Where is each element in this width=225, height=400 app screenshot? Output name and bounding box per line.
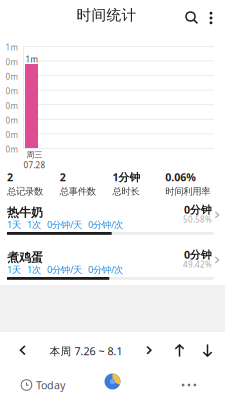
staticText: 时间利用率 [165, 186, 210, 197]
staticText: 1天 1次 0分钟/天 0分钟/次 [7, 218, 123, 231]
staticText: 49.42% [183, 259, 212, 270]
button[interactable]: Previous week [14, 336, 32, 366]
staticText: 0m [5, 115, 17, 126]
button[interactable]: 热牛奶 [0, 201, 225, 246]
staticText: 周三 [26, 150, 42, 160]
staticText: 0m [5, 130, 17, 140]
staticText: 总事件数 [60, 186, 96, 197]
staticText: 50.58% [183, 214, 212, 225]
staticText: 2 [7, 170, 13, 184]
staticText: Today [36, 378, 65, 392]
button[interactable]: 煮鸡蛋 [0, 246, 225, 291]
staticText: 0m [5, 86, 17, 96]
staticText: 1天 1次 0分钟/天 0分钟/次 [7, 263, 123, 276]
staticText: 时间统计 [76, 6, 136, 24]
staticText: 总时长 [112, 186, 139, 197]
staticText: 0m [5, 100, 17, 111]
button[interactable]: More options [202, 7, 220, 29]
staticText: 0分钟 [184, 247, 212, 262]
staticText: 2 [60, 170, 66, 184]
staticText: 1分钟 [112, 170, 140, 184]
staticText: 1m [5, 42, 17, 53]
staticText: 0m [5, 71, 17, 82]
button[interactable]: Search [181, 7, 203, 29]
staticText: 0m [5, 144, 17, 155]
button[interactable]: Scroll down [198, 336, 218, 366]
staticText: 总记录数 [7, 186, 43, 197]
staticText: 0.06% [165, 170, 196, 184]
staticText: 0m [5, 57, 17, 67]
staticText: 本周 7.26 ~ 8.1 [49, 344, 122, 358]
button[interactable]: Scroll up [170, 336, 190, 366]
staticText: 0分钟 [184, 202, 212, 217]
staticText: 热牛奶 [7, 205, 43, 220]
staticText: 07.28 [23, 160, 45, 170]
button[interactable]: Next week [140, 336, 158, 366]
button[interactable]: Today [21, 374, 65, 396]
staticText: 1m [25, 54, 37, 65]
staticText: 煮鸡蛋 [7, 250, 43, 265]
button[interactable]: More [177, 374, 201, 396]
